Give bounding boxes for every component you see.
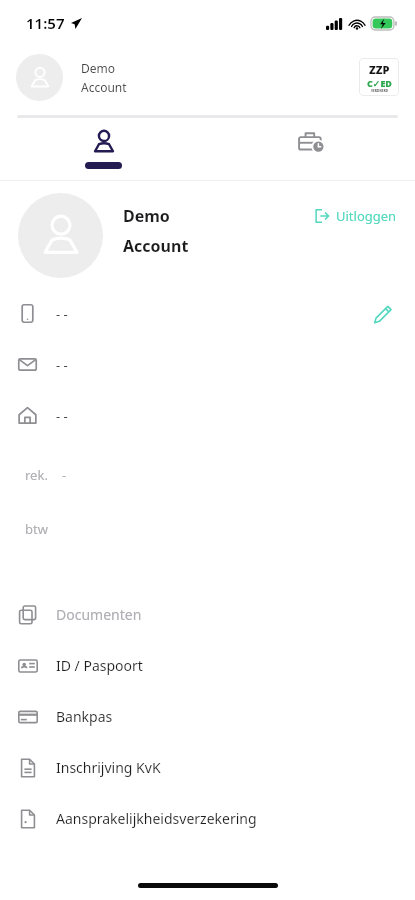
button[interactable]: Edit profile (367, 299, 397, 329)
staticText: btw (25, 520, 48, 538)
staticText: - - (56, 407, 68, 425)
staticText: ZZP (369, 62, 390, 77)
button[interactable]: Documenten (0, 589, 415, 640)
staticText: - - (56, 356, 68, 374)
staticText: - - (56, 305, 68, 323)
button[interactable]: Account avatar (16, 54, 63, 101)
button[interactable]: Profile picture (18, 193, 103, 278)
button[interactable]: - - (0, 288, 415, 339)
staticText: Account (81, 79, 127, 95)
staticText: Documenten (56, 605, 142, 624)
staticText: Inschrijving KvK (56, 758, 161, 777)
button[interactable]: - - (0, 390, 415, 441)
staticText: Account (123, 235, 189, 257)
staticText: Bankpas (56, 707, 113, 726)
staticText: ID / Paspoort (56, 656, 143, 675)
button[interactable]: Uitloggen (315, 207, 397, 225)
button[interactable]: Profile tab (0, 118, 207, 180)
staticText: Demo (81, 60, 116, 76)
button[interactable]: Work history tab (207, 118, 415, 180)
staticText: 11:57 (26, 13, 65, 33)
button[interactable]: Bankpas (0, 691, 415, 742)
staticText: rek. (25, 466, 48, 484)
staticText: C✓ED (367, 77, 392, 89)
button[interactable]: Inschrijving KvK (0, 742, 415, 793)
button[interactable]: Aansprakelijkheidsverzekering (0, 793, 415, 844)
staticText: Demo (123, 205, 170, 227)
staticText: Aansprakelijkheidsverzekering (56, 809, 257, 828)
staticText: - (62, 466, 67, 484)
button[interactable]: - - (0, 339, 415, 390)
button[interactable]: ZZP Goed Verzekerd logo (359, 58, 399, 96)
staticText: VERZEKERD (371, 89, 388, 93)
staticText: Uitloggen (336, 207, 397, 225)
button[interactable]: ID / Paspoort (0, 640, 415, 691)
